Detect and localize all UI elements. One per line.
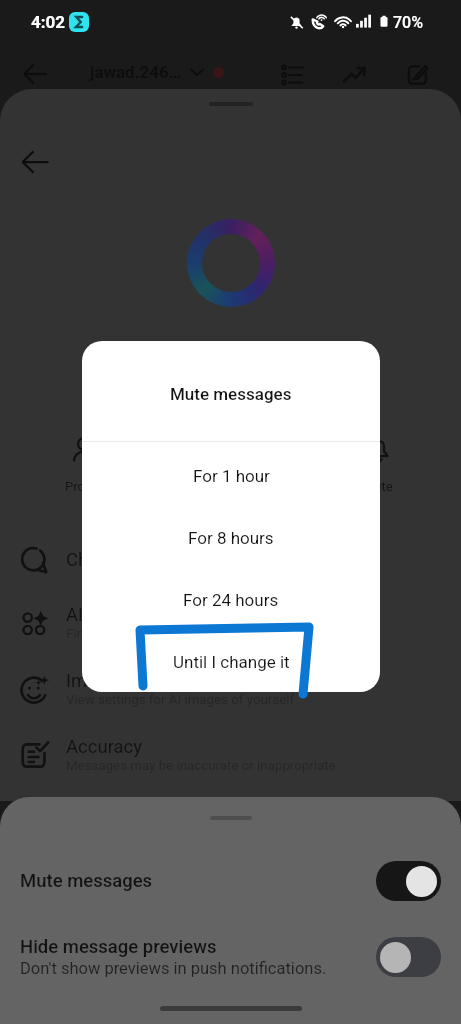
button[interactable]: Back bbox=[14, 53, 56, 95]
button[interactable]: Chats bbox=[0, 530, 461, 590]
staticText: Images of you bbox=[66, 670, 183, 692]
staticText: Don't show previews in push notification… bbox=[20, 959, 327, 978]
button[interactable]: jawad.246… bbox=[90, 62, 224, 82]
staticText: Messages may be inaccurate or inappropri… bbox=[66, 758, 336, 774]
staticText: jawad.246… bbox=[90, 62, 182, 82]
staticText: For 8 hours bbox=[188, 528, 274, 548]
button[interactable]: Accuracy bbox=[0, 722, 461, 788]
staticText: Find out more bbox=[66, 626, 148, 642]
button[interactable]: New message bbox=[398, 55, 438, 95]
staticText: Search bbox=[162, 479, 202, 494]
button[interactable]: Search bbox=[147, 435, 217, 494]
button[interactable]: Back bbox=[13, 140, 57, 184]
button[interactable]: On bbox=[376, 861, 441, 901]
staticText: 4:02 bbox=[31, 12, 66, 32]
button[interactable]: Profile bbox=[49, 435, 119, 494]
staticText: 70% bbox=[393, 13, 423, 32]
staticText: Mute bbox=[363, 479, 393, 494]
staticText: AI bbox=[66, 604, 84, 626]
staticText: For 24 hours bbox=[183, 590, 279, 610]
staticText: View settings for AI images of yourself bbox=[66, 692, 295, 708]
button[interactable]: Activity bbox=[334, 55, 374, 95]
button[interactable]: AI bbox=[0, 590, 461, 656]
button[interactable]: For 8 hours bbox=[82, 507, 380, 569]
staticText: Hide message previews bbox=[20, 936, 217, 958]
staticText: For 1 hour bbox=[193, 466, 270, 486]
button[interactable]: Hide message previews bbox=[0, 926, 461, 988]
staticText: Block bbox=[264, 479, 297, 494]
button[interactable]: Mute messages bbox=[0, 850, 461, 912]
staticText: Until I change it bbox=[173, 652, 290, 672]
button[interactable]: Mute bbox=[343, 435, 413, 494]
staticText: Profile bbox=[65, 479, 103, 494]
button[interactable]: Off bbox=[376, 937, 441, 977]
staticText: Accuracy bbox=[66, 736, 143, 758]
staticText: Chats bbox=[66, 549, 114, 571]
button[interactable]: Until I change it bbox=[82, 631, 380, 692]
button[interactable]: Block bbox=[245, 435, 315, 494]
button[interactable]: For 1 hour bbox=[82, 445, 380, 507]
button[interactable]: For 24 hours bbox=[82, 569, 380, 631]
button[interactable]: Threads bbox=[272, 55, 312, 95]
staticText: Mute messages bbox=[20, 870, 153, 892]
button[interactable]: Images of you bbox=[0, 656, 461, 722]
staticText: Mute messages bbox=[170, 384, 292, 404]
